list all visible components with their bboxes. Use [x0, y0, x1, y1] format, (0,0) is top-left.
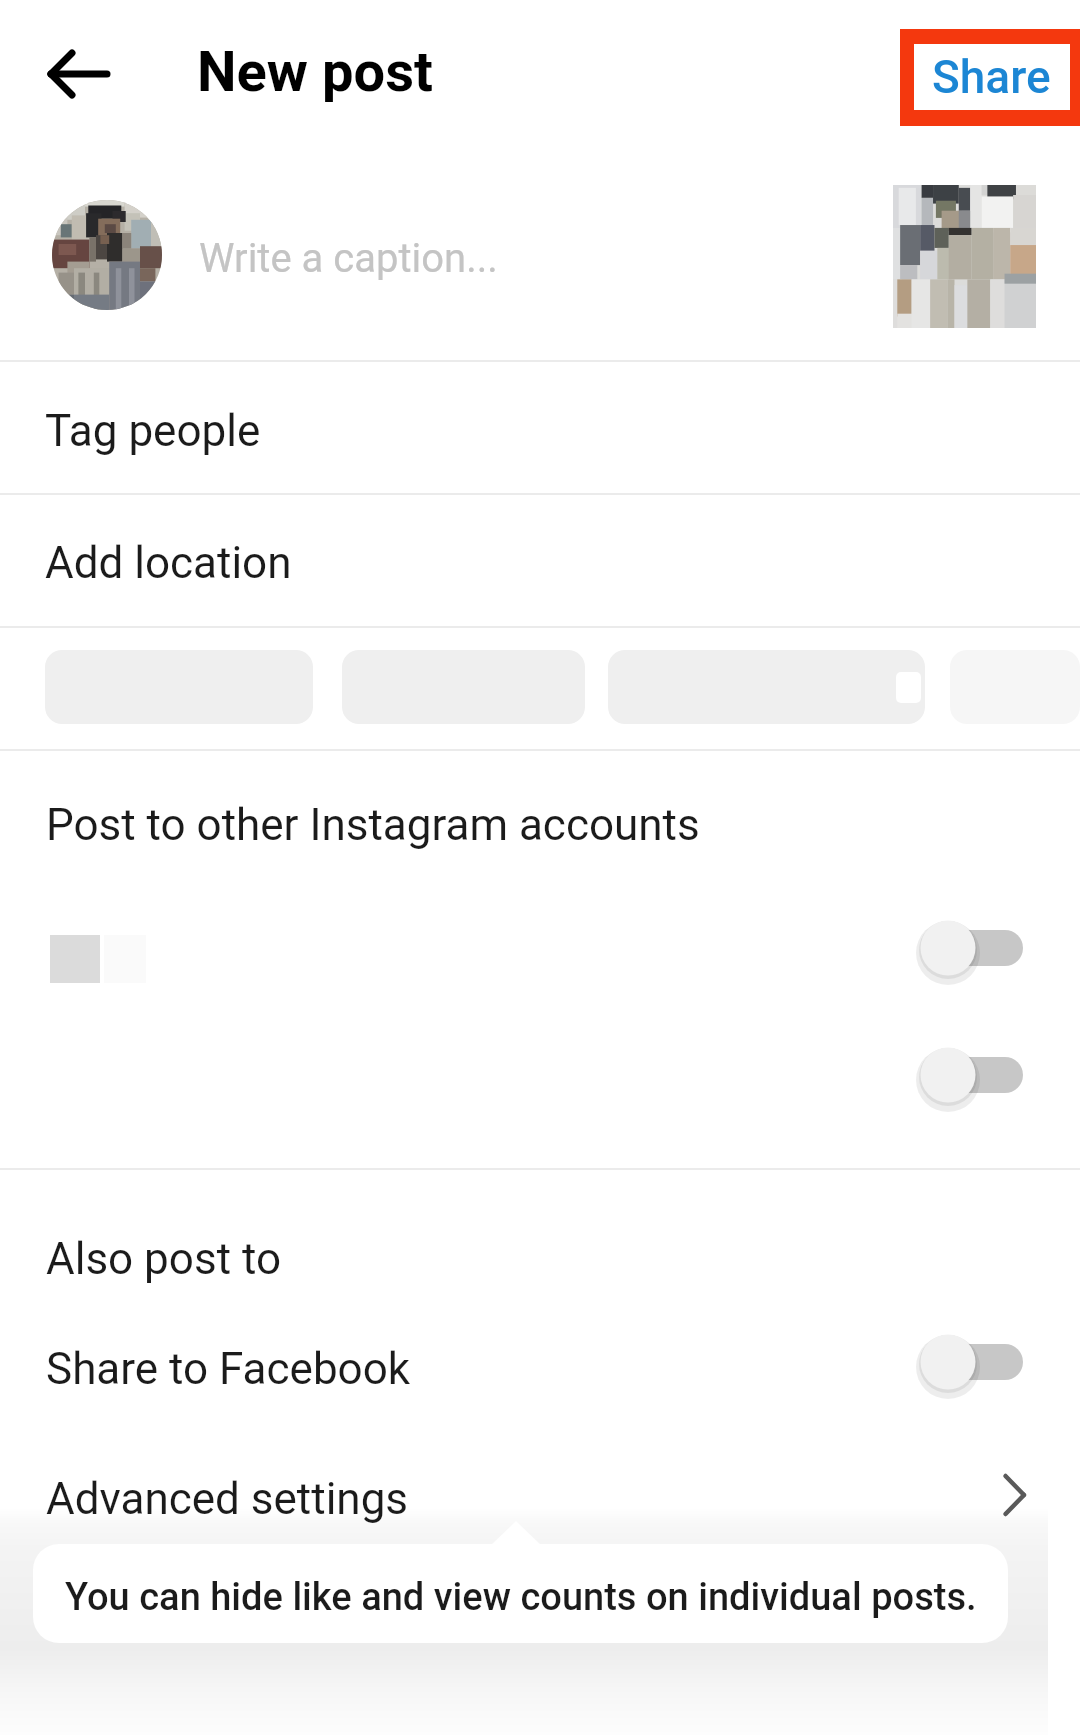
staticText: You can hide like and view counts on ind…	[65, 1575, 977, 1620]
button[interactable]: Tag people	[0, 365, 1080, 496]
staticText: Advanced settings	[46, 1473, 409, 1525]
button[interactable]: Share to Facebook	[0, 1302, 1080, 1436]
button[interactable]: Toggle	[910, 1037, 1040, 1113]
button[interactable]: Advanced settings	[0, 1434, 1080, 1564]
button[interactable]: Add location	[0, 497, 1080, 628]
staticText: Also post to	[46, 1233, 281, 1285]
button[interactable]: Toggle	[910, 910, 1040, 986]
button[interactable]: Toggle	[910, 1324, 1040, 1400]
button[interactable]	[608, 650, 925, 724]
button[interactable]: You can hide like and view counts on ind…	[33, 1544, 1008, 1643]
staticText: Add location	[45, 537, 292, 589]
staticText: Post to other Instagram accounts	[46, 799, 700, 851]
button[interactable]: Back	[22, 34, 102, 114]
staticText: Share	[932, 50, 1051, 104]
button[interactable]: Selected media	[893, 185, 1036, 328]
staticText: Tag people	[45, 405, 261, 457]
staticText: Write a caption...	[199, 235, 498, 282]
staticText: Share to Facebook	[46, 1343, 411, 1395]
button[interactable]: Profile picture	[52, 200, 162, 310]
staticText: New post	[197, 39, 433, 105]
button[interactable]: Share	[900, 29, 1080, 126]
